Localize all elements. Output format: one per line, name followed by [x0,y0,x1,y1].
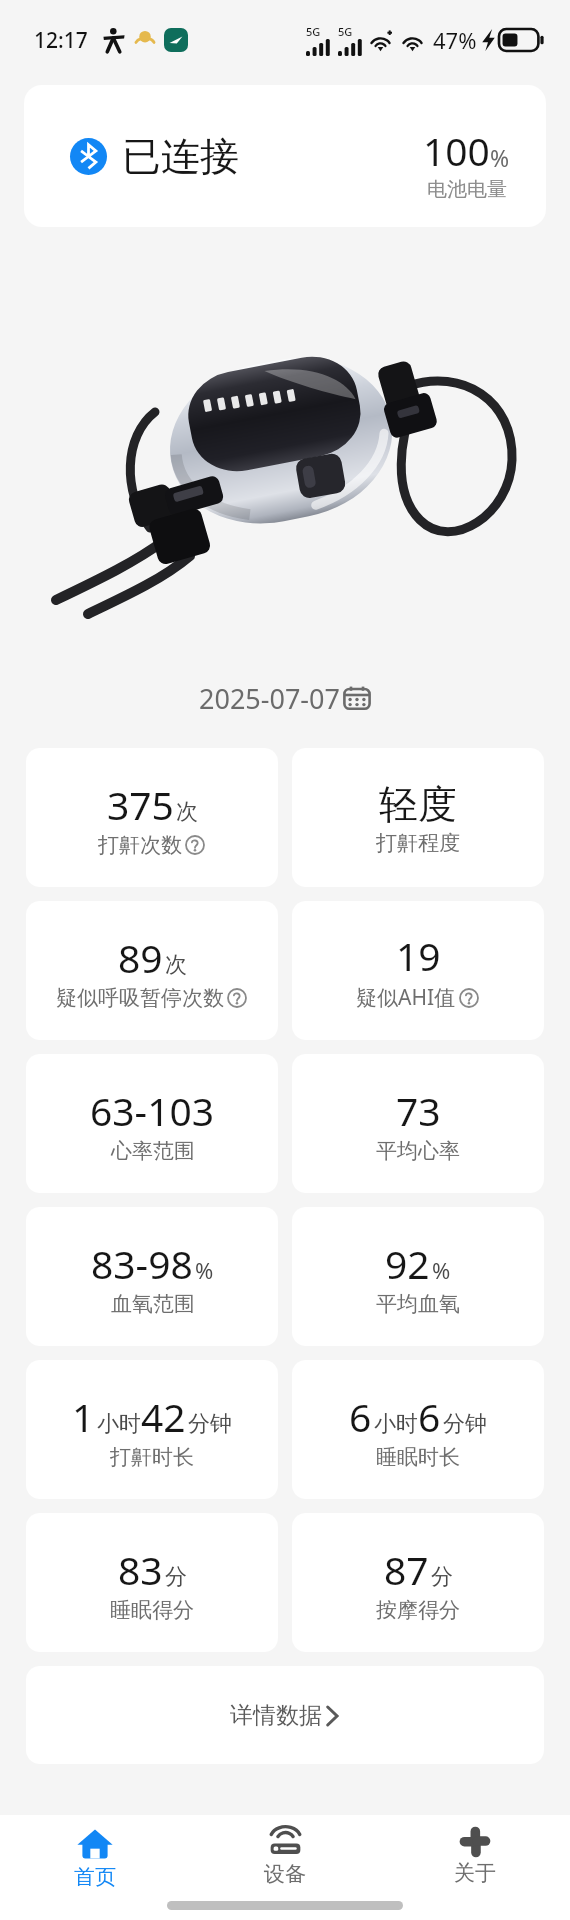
staticText: 疑似AHI值 [356,983,456,1012]
staticText: 6 [418,1390,441,1443]
button[interactable]: 375 [26,748,278,887]
button[interactable]: 轻度 [292,748,544,887]
staticText: 心率范围 [111,1138,195,1164]
staticText: 睡眠得分 [110,1597,194,1623]
other: 选择日期 [342,683,372,713]
staticText: 分钟 [443,1410,487,1438]
button[interactable]: 6 [292,1360,544,1499]
staticText: 首页 [74,1864,116,1890]
staticText: 92 [385,1237,430,1290]
staticText: 73 [396,1084,441,1137]
staticText: 按摩得分 [376,1597,460,1623]
staticText: 设备 [264,1861,306,1887]
staticText: 详情数据 [230,1701,322,1730]
staticText: 5G [306,24,321,39]
staticText: 小时 [97,1410,141,1438]
staticText: 次 [176,798,198,826]
staticText: 疑似呼吸暂停次数 [56,985,224,1011]
staticText: 血氧范围 [111,1291,195,1317]
button[interactable]: 设备 [190,1826,380,1887]
staticText: 平均心率 [376,1138,460,1164]
staticText: 375 [107,778,174,831]
staticText: 轻度 [379,780,457,829]
staticText: 83-98 [91,1237,193,1290]
button[interactable]: 83 [26,1513,278,1652]
staticText: % [490,142,510,173]
staticText: 2025-07-07 [199,680,340,717]
staticText: 平均血氧 [376,1291,460,1317]
staticText: 打鼾次数 [98,832,182,858]
button[interactable]: 已连接 [24,85,546,227]
button[interactable]: 87 [292,1513,544,1652]
button[interactable]: 92 [292,1207,544,1346]
staticText: 12:17 [34,26,88,55]
staticText: 打鼾程度 [376,830,460,856]
staticText: 19 [396,929,441,982]
staticText: 6 [349,1390,372,1443]
staticText: 100 [423,124,490,177]
staticText: 63-103 [90,1084,215,1137]
staticText: % [432,1255,451,1285]
button[interactable]: 2025-07-07 [0,672,570,724]
staticText: 89 [118,931,163,984]
button[interactable]: 89 [26,901,278,1040]
staticText: 83 [118,1543,163,1596]
staticText: 分 [431,1563,453,1591]
staticText: 已连接 [122,132,239,181]
staticText: 分钟 [188,1410,232,1438]
button[interactable]: 1 [26,1360,278,1499]
staticText: 1 [72,1390,95,1443]
button[interactable]: 63-103 [26,1054,278,1193]
staticText: 5G [338,24,353,39]
staticText: 分 [165,1563,187,1591]
staticText: 小时 [374,1410,418,1438]
staticText: % [195,1255,214,1285]
staticText: 47% [433,25,477,55]
staticText: 关于 [454,1860,496,1886]
button[interactable]: 73 [292,1054,544,1193]
staticText: 87 [384,1543,429,1596]
button[interactable]: 首页 [0,1826,190,1890]
staticText: 电池电量 [427,177,507,202]
button[interactable]: 83-98 [26,1207,278,1346]
staticText: 打鼾时长 [110,1444,194,1470]
button[interactable]: 详情数据 [26,1666,544,1764]
staticText: 睡眠时长 [376,1444,460,1470]
staticText: 次 [165,951,187,979]
staticText: 42 [141,1390,186,1443]
button[interactable]: 关于 [380,1826,570,1886]
button[interactable]: 19 [292,901,544,1040]
